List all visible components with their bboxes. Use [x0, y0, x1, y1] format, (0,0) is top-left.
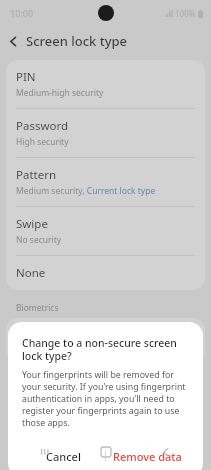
staticText: Your fingerprints will be removed for yo… — [22, 369, 189, 429]
staticText: Face — [16, 327, 169, 343]
staticText: 10:00 — [10, 7, 34, 19]
staticText: Screen lock type — [26, 32, 128, 50]
button[interactable]: PIN — [6, 60, 205, 108]
button[interactable]: Remove data — [106, 441, 189, 470]
staticText: Swipe — [16, 216, 48, 232]
staticText: Medium-high security — [16, 87, 104, 99]
staticText: Biometrics — [16, 302, 59, 314]
staticText: None — [16, 265, 46, 281]
button[interactable]: Home — [90, 436, 122, 468]
button[interactable]: Password — [6, 109, 205, 157]
button[interactable]: Back — [0, 28, 26, 54]
button[interactable]: Recents — [29, 436, 61, 468]
staticText: Remove data — [113, 449, 182, 464]
staticText: PIN — [16, 69, 36, 85]
staticText: No security — [16, 234, 62, 246]
staticText: 100% — [175, 8, 196, 19]
button[interactable]: Cancel — [22, 441, 105, 470]
staticText: Medium security, Current lock type — [16, 185, 156, 197]
button[interactable]: Swipe — [6, 207, 205, 255]
staticText: High security — [16, 136, 69, 148]
button[interactable]: Face — [6, 318, 205, 352]
button[interactable]: None — [6, 256, 205, 290]
staticText: Pattern — [16, 167, 57, 183]
staticText: Password — [16, 118, 69, 134]
button[interactable]: Pattern — [6, 158, 205, 206]
staticText: Change to a non-secure screen lock type? — [22, 336, 189, 363]
staticText: Cancel — [46, 449, 81, 464]
button[interactable]: Back — [150, 436, 182, 468]
